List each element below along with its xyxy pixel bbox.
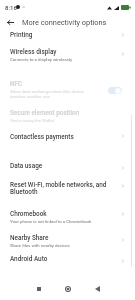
staticText: Your phone is not linked to a Chromebook: [10, 219, 92, 224]
staticText: Contactless payments: [10, 133, 74, 141]
button[interactable]: [0, 176, 135, 199]
button[interactable]: [0, 128, 135, 148]
staticText: NFC: [10, 80, 23, 88]
staticText: Nearby Share: [10, 234, 49, 242]
button[interactable]: [0, 103, 135, 124]
button[interactable]: [0, 43, 135, 66]
button[interactable]: NFC toggle: [108, 87, 122, 94]
button[interactable]: Back: [91, 283, 103, 295]
button[interactable]: [0, 74, 135, 100]
staticText: Reset Wi-Fi, mobile networks, and Blueto…: [10, 181, 120, 195]
staticText: Data usage: [10, 162, 43, 170]
button[interactable]: [0, 29, 135, 43]
button[interactable]: Home: [62, 283, 74, 295]
staticText: Allow data exchange when this device tou…: [10, 89, 94, 99]
staticText: Android Auto: [10, 255, 48, 263]
staticText: Connects to a display wirelessly: [10, 57, 73, 62]
staticText: Wireless display: [10, 48, 57, 56]
button[interactable]: Back: [2, 14, 19, 31]
button[interactable]: [0, 251, 135, 272]
button[interactable]: [0, 157, 135, 176]
button[interactable]: [0, 228, 135, 250]
staticText: 8:16: [5, 4, 17, 11]
staticText: You're using the Wallet: [10, 118, 55, 123]
button[interactable]: [0, 204, 135, 227]
staticText: Share files with nearby devices: [10, 243, 70, 248]
button[interactable]: Recents: [33, 283, 45, 295]
staticText: Chromebook: [10, 210, 47, 218]
staticText: Printing: [10, 31, 33, 39]
staticText: Secure element position: [10, 109, 80, 117]
staticText: More connectivity options: [22, 18, 107, 27]
